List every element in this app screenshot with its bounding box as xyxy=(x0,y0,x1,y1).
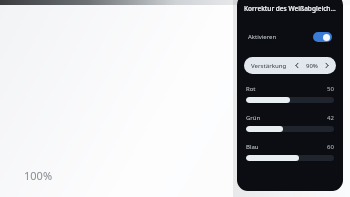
staticText: Aktivieren xyxy=(248,33,277,41)
button[interactable]: Aktivieren xyxy=(239,27,341,47)
staticText: Grün xyxy=(246,114,261,122)
button[interactable]: Grün xyxy=(239,114,341,132)
staticText: 50 xyxy=(327,85,334,93)
staticText: Korrektur des Weißabgleichs mit 11 Punkt… xyxy=(244,4,337,13)
staticText: 42 xyxy=(327,114,334,122)
button[interactable]: Rot xyxy=(239,85,341,103)
button[interactable]: Blau xyxy=(239,143,341,161)
button[interactable]: Verstärkung xyxy=(244,57,336,74)
staticText: Blau xyxy=(246,143,259,151)
staticText: Verstärkung xyxy=(251,62,287,70)
other: Aktivieren einschalten xyxy=(313,32,332,42)
staticText: Rot xyxy=(246,85,256,93)
staticText: 100% xyxy=(24,168,53,183)
staticText: 90% xyxy=(306,62,318,70)
staticText: 60 xyxy=(327,143,334,151)
button[interactable]: Verringern xyxy=(295,62,299,69)
button[interactable]: Erhöhen xyxy=(325,62,329,69)
